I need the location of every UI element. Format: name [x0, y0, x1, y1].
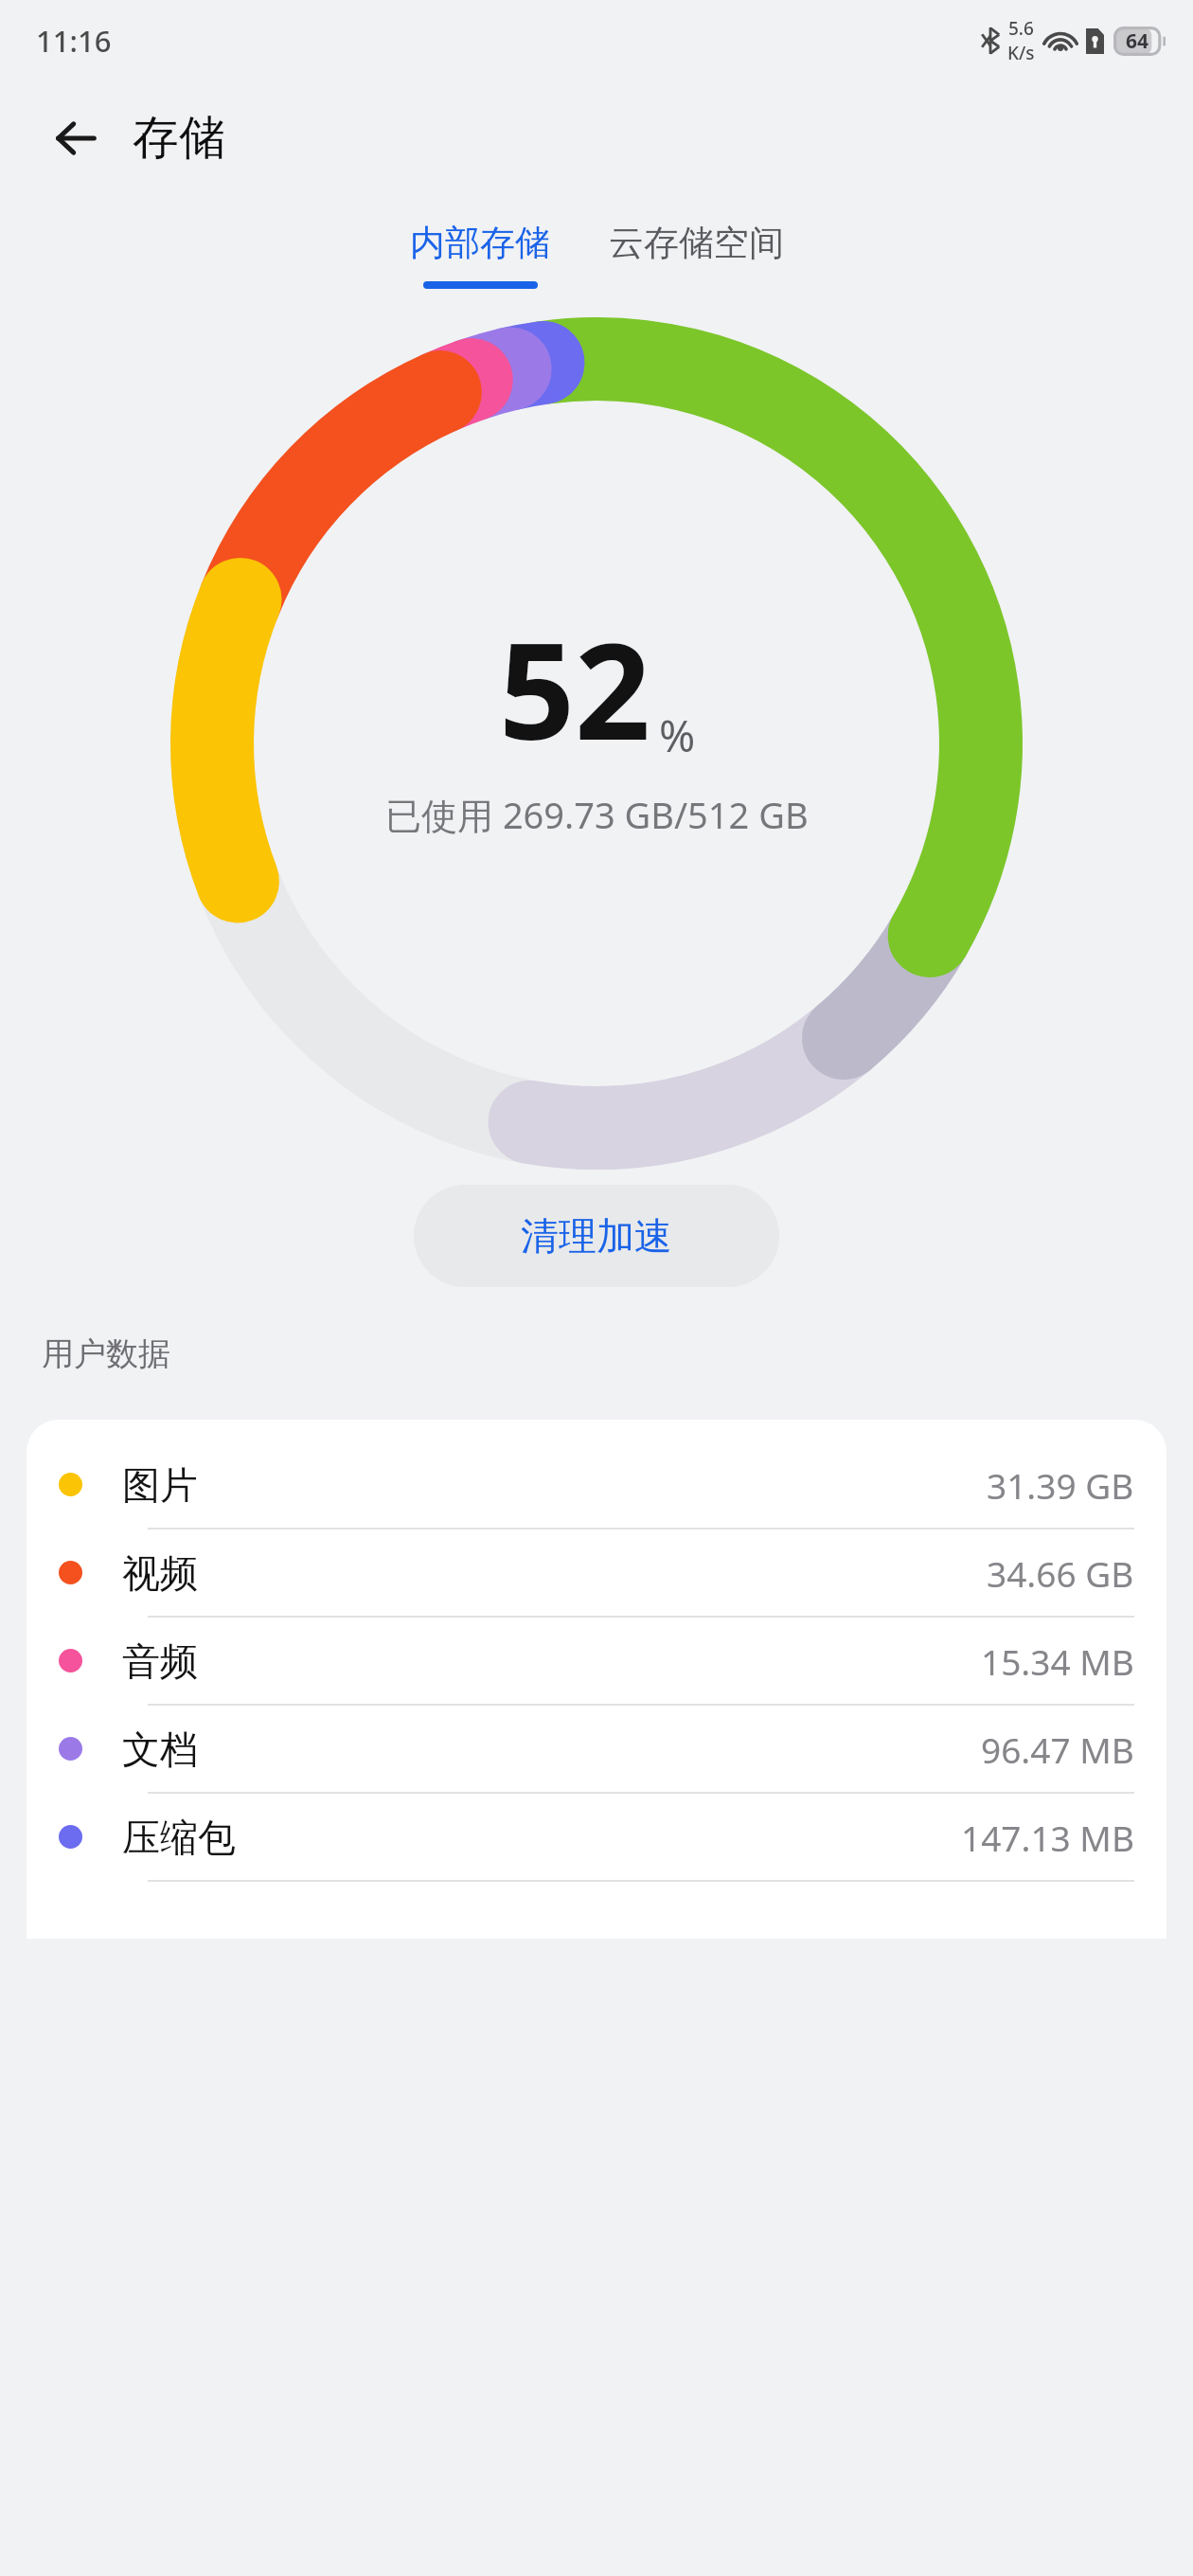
staticText: 存储 [133, 109, 225, 168]
staticText: 文档 [122, 1726, 198, 1773]
staticText: 34.66 GB [987, 1549, 1134, 1597]
staticText: 清理加速 [521, 1212, 672, 1260]
button[interactable]: 文档 [27, 1706, 1166, 1792]
staticText: 147.13 MB [961, 1814, 1134, 1861]
staticText: 11:16 [36, 21, 112, 61]
staticText: 64 [1126, 27, 1149, 55]
staticText: 5.6 [1008, 16, 1034, 41]
button[interactable]: 音频 [27, 1618, 1166, 1704]
button[interactable]: 内部存储 [404, 217, 556, 293]
staticText: 内部存储 [410, 221, 550, 265]
staticText: 云存储空间 [609, 221, 784, 265]
button[interactable]: 返回 [40, 102, 112, 174]
staticText: 视频 [122, 1549, 198, 1597]
staticText: 15.34 MB [981, 1637, 1134, 1685]
staticText: 31.39 GB [987, 1461, 1134, 1509]
button[interactable]: 压缩包 [27, 1794, 1166, 1880]
staticText: 用户数据 [42, 1333, 170, 1374]
staticText: 压缩包 [122, 1814, 236, 1861]
button[interactable]: 图片 [27, 1441, 1166, 1528]
staticText: 音频 [122, 1637, 198, 1685]
staticText: 52 [499, 598, 651, 778]
button[interactable]: 清理加速 [414, 1185, 779, 1287]
button[interactable]: 云存储空间 [603, 217, 790, 269]
button[interactable]: 视频 [27, 1529, 1166, 1616]
staticText: 96.47 MB [981, 1726, 1134, 1773]
staticText: 已使用 269.73 GB/512 GB [385, 790, 809, 839]
staticText: K/s [1007, 41, 1035, 65]
staticText: % [659, 706, 696, 765]
staticText: 图片 [122, 1461, 198, 1509]
